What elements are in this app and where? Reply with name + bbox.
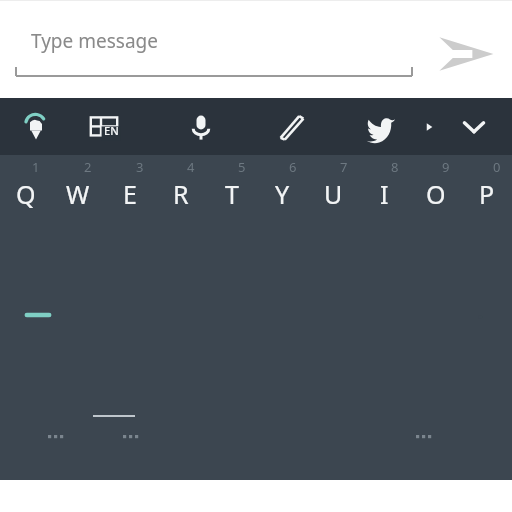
staticText: 9 — [442, 158, 450, 176]
staticText: 4 — [187, 158, 195, 176]
button[interactable]: Edit — [273, 108, 311, 146]
staticText: Type message — [31, 28, 158, 54]
button[interactable]: 8 — [359, 155, 410, 223]
button[interactable]: Gesture input — [17, 108, 55, 146]
staticText: 7 — [340, 158, 348, 176]
button[interactable]: Send — [432, 28, 506, 80]
button[interactable]: Hide keyboard — [455, 108, 493, 146]
button[interactable]: 7 — [308, 155, 359, 223]
button[interactable]: 6 — [257, 155, 308, 223]
staticText: I — [380, 177, 389, 211]
button[interactable]: Voice input — [182, 108, 220, 146]
staticText: EN — [104, 123, 119, 138]
staticText: 3 — [136, 158, 144, 176]
staticText: 0 — [493, 158, 501, 176]
staticText: T — [225, 177, 239, 211]
staticText: 8 — [391, 158, 399, 176]
button[interactable]: More — [418, 116, 440, 138]
staticText: R — [173, 177, 189, 211]
staticText: Q — [16, 177, 36, 211]
button[interactable]: 0 — [461, 155, 512, 223]
staticText: Y — [275, 177, 290, 211]
staticText: 2 — [84, 158, 92, 176]
button[interactable]: 4 — [155, 155, 206, 223]
button[interactable]: 1 — [0, 155, 52, 223]
staticText: E — [123, 177, 137, 211]
button[interactable]: 3 — [104, 155, 155, 223]
staticText: W — [66, 177, 90, 211]
staticText: U — [324, 177, 343, 211]
staticText: P — [479, 177, 495, 211]
button[interactable]: 9 — [410, 155, 461, 223]
staticText: 5 — [238, 158, 246, 176]
button[interactable]: Keyboard layout — [85, 108, 123, 146]
staticText: O — [426, 177, 446, 211]
button[interactable]: Type message — [14, 22, 414, 80]
staticText: 1 — [32, 158, 40, 176]
button[interactable]: 2 — [52, 155, 104, 223]
button[interactable]: Twitter — [362, 108, 400, 146]
staticText: 6 — [289, 158, 297, 176]
button[interactable]: 5 — [206, 155, 257, 223]
